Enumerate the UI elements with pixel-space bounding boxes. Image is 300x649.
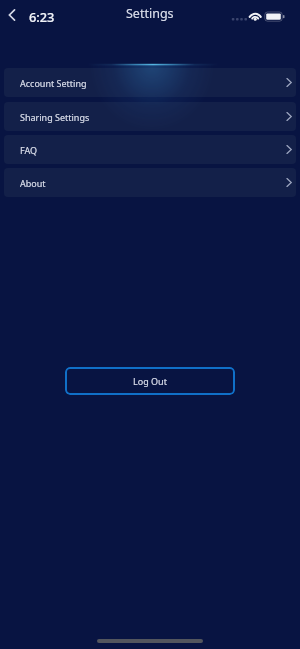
button[interactable]: Account Setting (4, 68, 296, 97)
staticText: Account Setting (20, 77, 87, 89)
button[interactable]: About (4, 168, 296, 197)
staticText: Log Out (133, 375, 167, 387)
button[interactable]: Back (0, 0, 26, 29)
staticText: About (20, 177, 46, 189)
staticText: 6:23 (29, 8, 55, 25)
button[interactable]: Sharing Settings (4, 102, 296, 131)
staticText: FAQ (20, 144, 38, 156)
button[interactable]: FAQ (4, 135, 296, 164)
staticText: Settings (126, 5, 174, 22)
staticText: Sharing Settings (20, 111, 90, 123)
button[interactable]: Log Out (65, 367, 235, 395)
